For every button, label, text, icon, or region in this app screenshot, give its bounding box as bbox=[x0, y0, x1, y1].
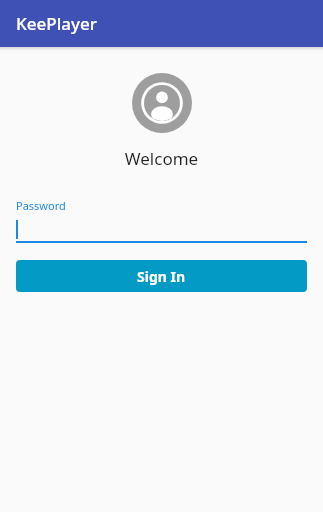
staticText: Sign In bbox=[137, 267, 186, 286]
staticText: Welcome bbox=[0, 147, 323, 170]
button[interactable]: Sign In bbox=[16, 260, 307, 292]
staticText: KeePlayer bbox=[16, 12, 97, 35]
button[interactable] bbox=[16, 219, 307, 241]
staticText: Password bbox=[16, 198, 66, 213]
